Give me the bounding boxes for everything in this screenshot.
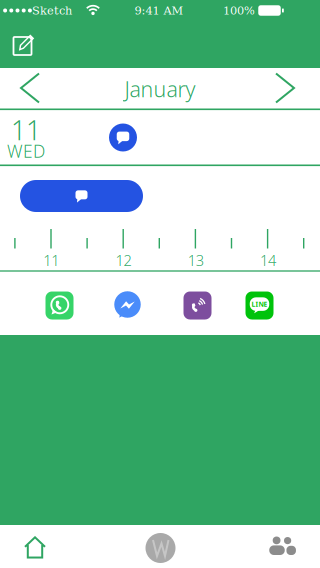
button[interactable]: Home [13, 525, 57, 568]
button[interactable]: Contacts [261, 525, 305, 568]
button[interactable]: Compose [10, 29, 40, 59]
staticText: 9:41 AM [134, 4, 183, 17]
staticText: 14 [260, 250, 276, 270]
button[interactable]: W [138, 526, 182, 568]
staticText: LINE [251, 300, 267, 309]
button[interactable]: WhatsApp [45, 291, 73, 319]
staticText: 13 [188, 250, 204, 270]
staticText: 11 [43, 250, 59, 270]
staticText: 12 [115, 250, 131, 270]
staticText: WED [7, 139, 45, 162]
button[interactable]: Messenger [113, 291, 141, 319]
button[interactable]: Next month [263, 66, 307, 110]
button[interactable]: LINE [245, 291, 273, 319]
button[interactable]: Previous month [8, 66, 52, 110]
staticText: 100% [223, 4, 255, 17]
staticText: 11 [11, 112, 41, 148]
staticText: Sketch [32, 4, 72, 17]
staticText: January [124, 75, 195, 103]
button[interactable]: Viber [183, 291, 211, 319]
button[interactable]: Messages [109, 123, 137, 151]
button[interactable]: New message [20, 180, 143, 212]
